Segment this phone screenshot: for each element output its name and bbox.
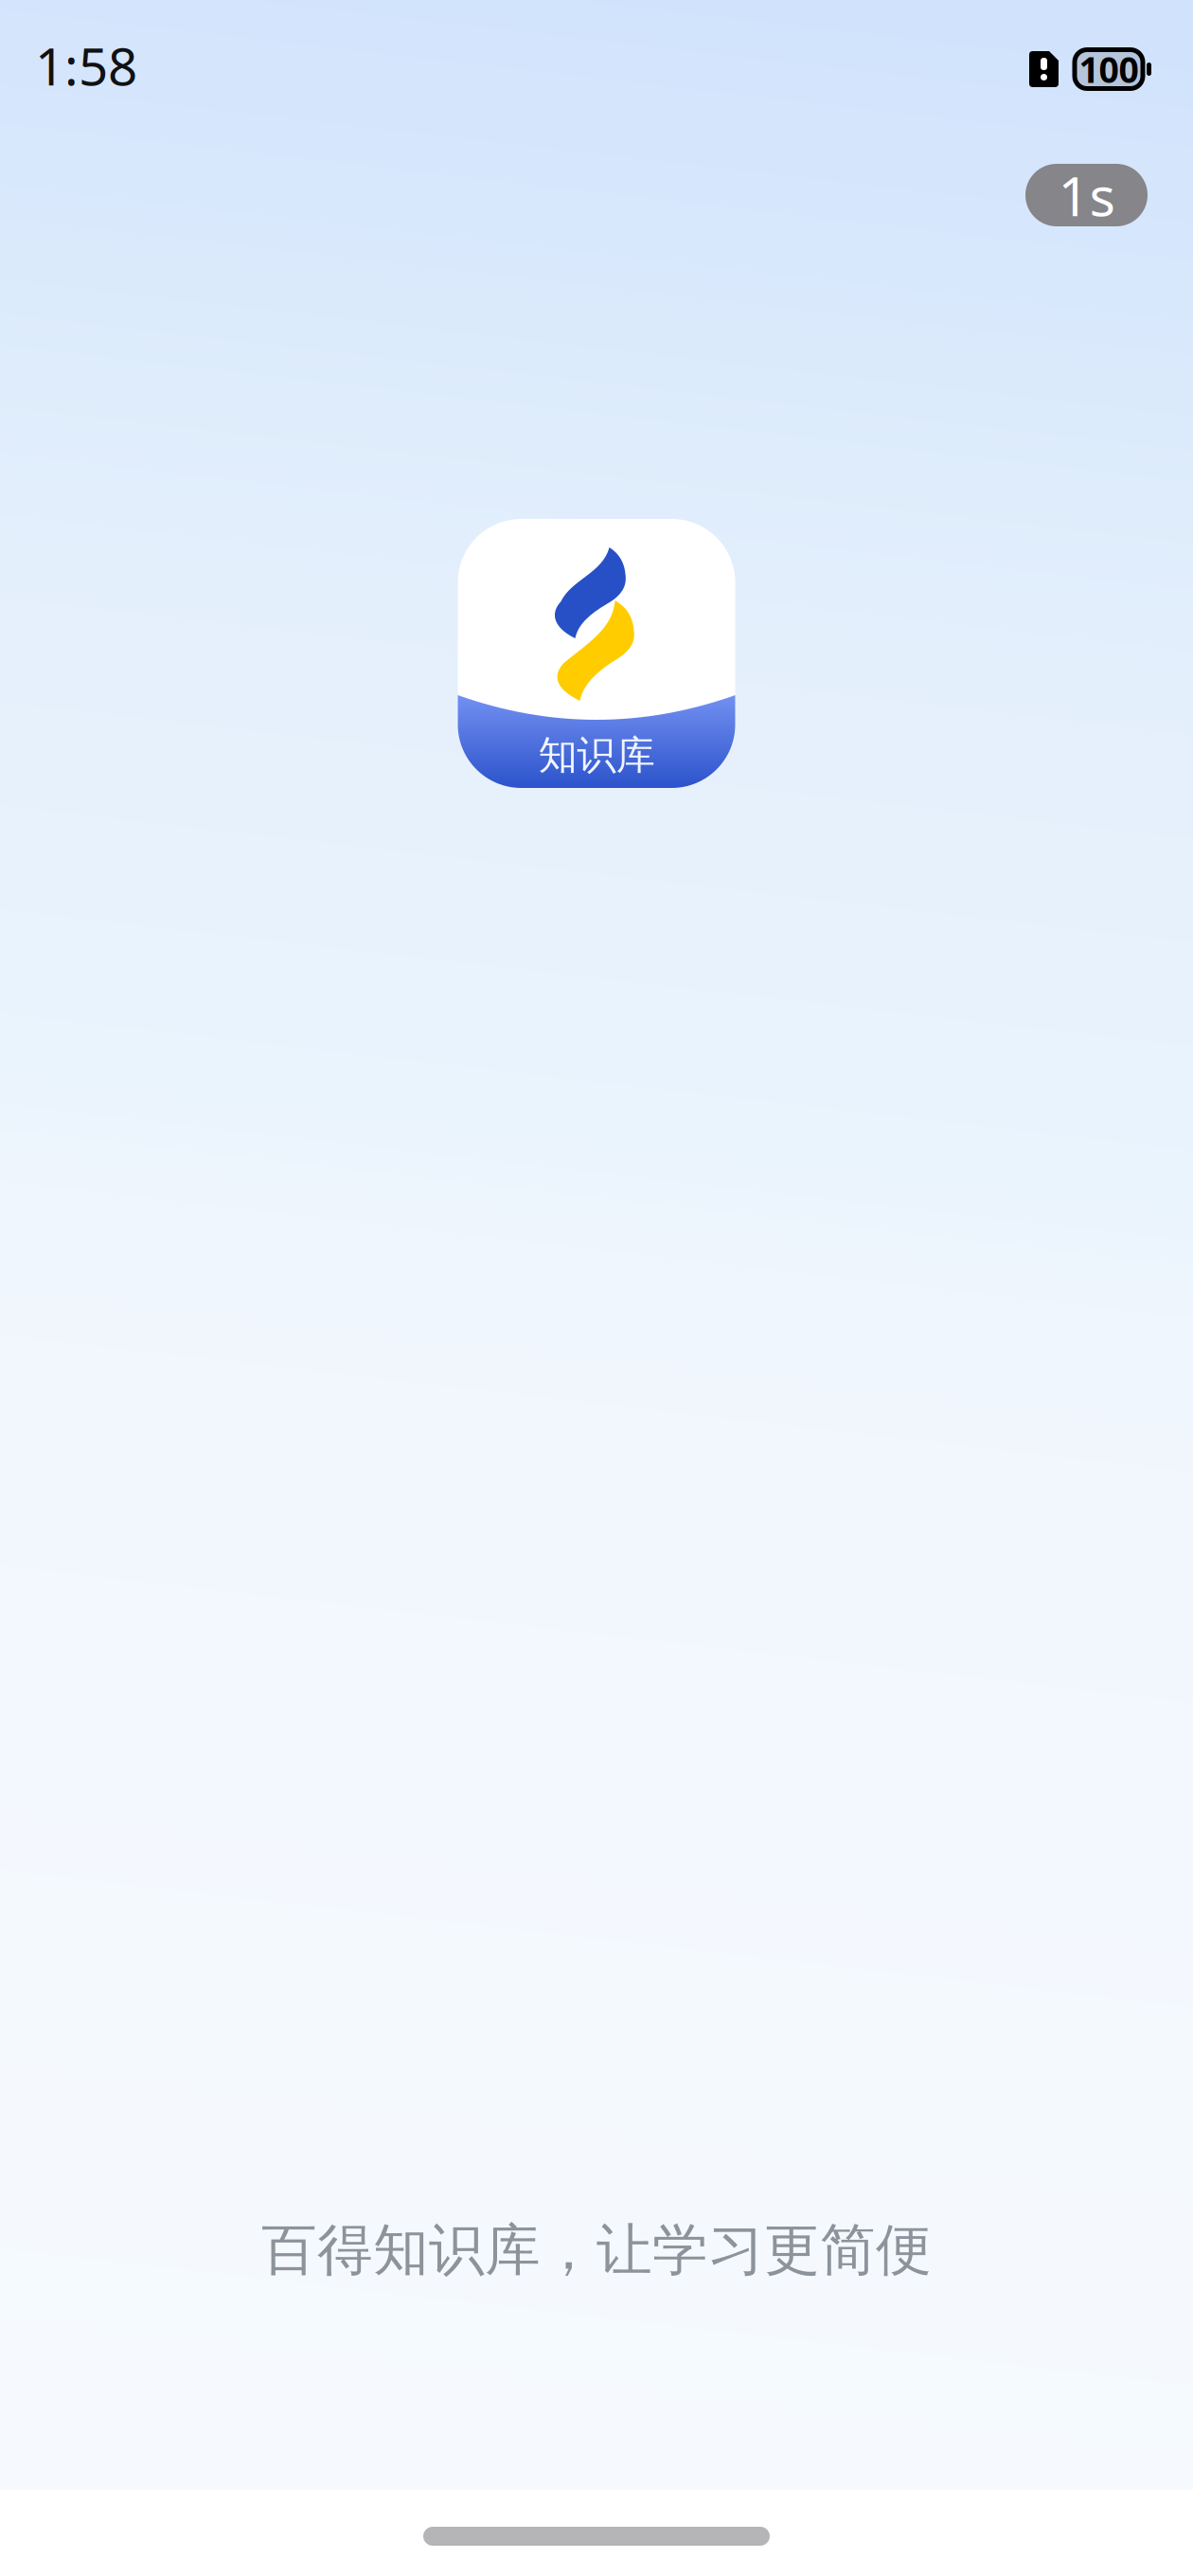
staticText: 1:58 (35, 31, 137, 100)
button[interactable]: Skip, 1 second (1025, 164, 1148, 226)
staticText: 100 (1079, 46, 1139, 93)
staticText: 知识库 (538, 731, 655, 779)
staticText: 1s (1058, 159, 1115, 231)
staticText: 百得知识库，让学习更简便 (261, 2216, 932, 2284)
